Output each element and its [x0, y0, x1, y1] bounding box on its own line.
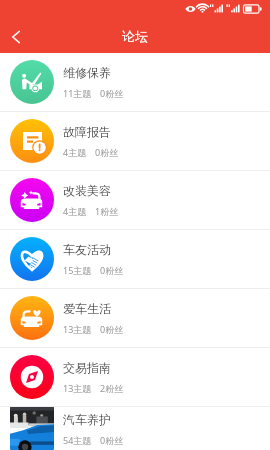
button[interactable]: 交易指南 [0, 348, 270, 406]
button[interactable]: 车友活动 [0, 230, 270, 288]
staticText: 0粉丝 [100, 323, 124, 335]
staticText: 爱车生活 [63, 301, 111, 316]
staticText: 13主题 [63, 323, 92, 335]
staticText: 改装美容 [63, 183, 111, 198]
staticText: 2粉丝 [100, 382, 124, 394]
staticText: 11主题 [63, 87, 92, 99]
staticText: 交易指南 [63, 360, 111, 375]
staticText: 故障报告 [63, 124, 111, 139]
staticText: 15主题 [63, 264, 92, 276]
staticText: 维修保养 [63, 65, 111, 80]
staticText: 0粉丝 [100, 264, 124, 276]
button[interactable]: Back [0, 19, 36, 55]
button[interactable]: 爱车生活 [0, 289, 270, 347]
staticText: 0粉丝 [100, 434, 124, 446]
button[interactable]: 汽车养护 [0, 407, 270, 450]
staticText: 1粉丝 [95, 205, 119, 217]
button[interactable]: 维修保养 [0, 53, 270, 111]
staticText: 论坛 [122, 28, 148, 44]
staticText: 0粉丝 [95, 146, 119, 158]
staticText: 4主题 [63, 205, 87, 217]
staticText: 0粉丝 [100, 87, 124, 99]
staticText: 车友活动 [63, 242, 111, 257]
staticText: 4主题 [63, 146, 87, 158]
button[interactable]: 改装美容 [0, 171, 270, 229]
staticText: 汽车养护 [63, 412, 111, 427]
staticText: 13主题 [63, 382, 92, 394]
staticText: 54主题 [63, 434, 92, 446]
button[interactable]: 故障报告 [0, 112, 270, 170]
